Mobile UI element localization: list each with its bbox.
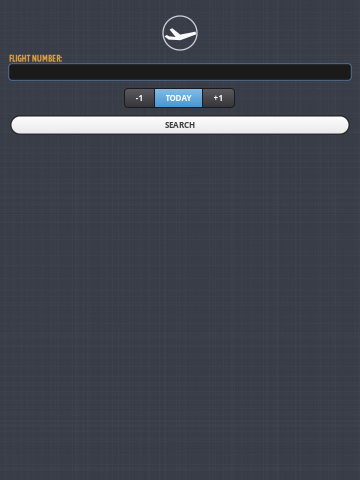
staticText: SEARCH: [165, 120, 195, 130]
button[interactable]: -1: [125, 89, 154, 107]
button[interactable]: +1: [203, 89, 234, 107]
button[interactable]: TODAY: [155, 89, 202, 107]
staticText: FLIGHT NUMBER:: [9, 54, 61, 63]
staticText: -1: [135, 93, 143, 103]
button[interactable]: SEARCH: [10, 115, 350, 135]
staticText: TODAY: [165, 93, 191, 103]
staticText: +1: [213, 93, 223, 103]
